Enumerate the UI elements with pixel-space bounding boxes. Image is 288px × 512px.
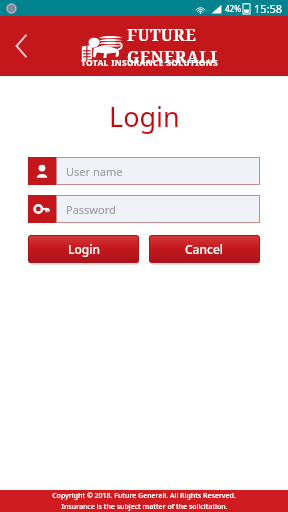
staticText: TOTAL INSURANCE SOLUTIONS <box>81 57 219 69</box>
staticText: Login <box>109 98 180 135</box>
button[interactable]: Password <box>28 195 260 223</box>
staticText: 42% <box>225 3 241 14</box>
staticText: Cancel <box>185 241 224 257</box>
staticText: Insurance is the subject matter of the s… <box>61 502 228 512</box>
staticText: 15:58 <box>254 1 283 16</box>
staticText: FUTURE <box>127 24 197 46</box>
staticText: User name <box>66 164 123 179</box>
staticText: Login <box>68 241 100 257</box>
button[interactable]: Cancel <box>149 235 260 263</box>
button[interactable]: User name <box>28 157 260 185</box>
button[interactable]: Back <box>0 24 44 68</box>
staticText: Copyright © 2018. Future Generali. All R… <box>52 491 236 501</box>
staticText: Password <box>66 202 116 217</box>
button[interactable]: Login <box>28 235 139 263</box>
staticText: GENERALI <box>127 46 218 68</box>
